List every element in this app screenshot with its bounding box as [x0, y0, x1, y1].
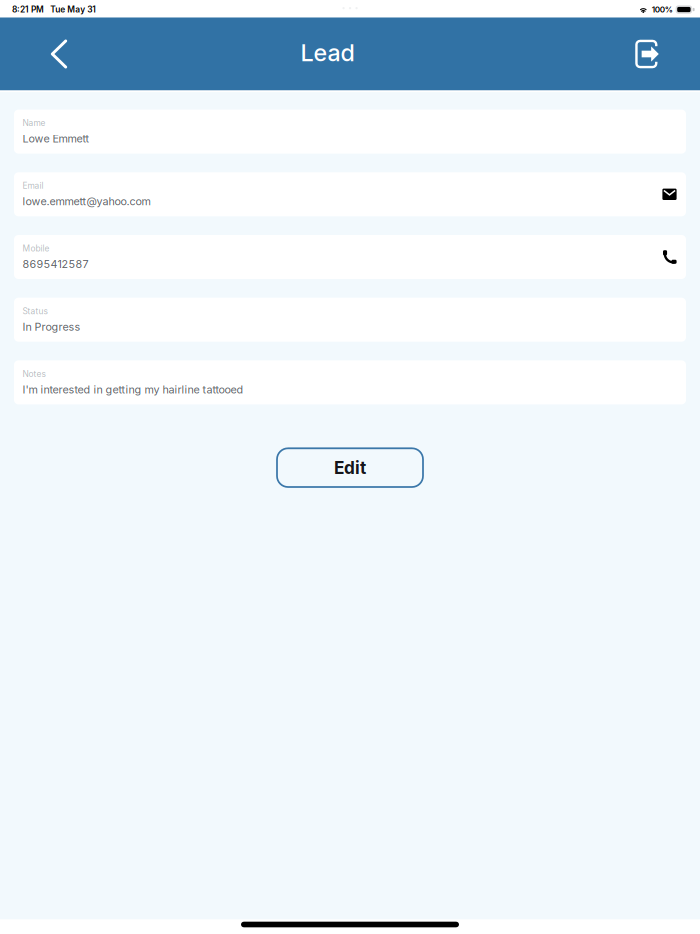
staticText: 8:21 PM — [12, 4, 44, 15]
staticText: Email — [22, 181, 43, 191]
staticText: 8695412587 — [22, 257, 88, 271]
staticText: In Progress — [22, 320, 80, 333]
staticText: lowe.emmett@yahoo.com — [22, 195, 150, 208]
button[interactable]: Mobile — [14, 235, 686, 279]
button[interactable]: Email — [14, 172, 686, 216]
button[interactable]: Status — [14, 298, 686, 342]
staticText: Edit — [334, 457, 366, 478]
staticText: Lead — [300, 38, 354, 67]
staticText: Mobile — [22, 243, 49, 254]
staticText: Notes — [22, 369, 45, 379]
staticText: I'm interested in getting my hairline ta… — [22, 383, 243, 396]
button[interactable]: Name — [14, 110, 686, 154]
button[interactable]: Back — [33, 17, 85, 90]
button[interactable]: Notes — [14, 360, 686, 404]
staticText: Tue May 31 — [50, 4, 96, 15]
staticText: Status — [22, 306, 47, 316]
button[interactable]: Log out — [621, 17, 673, 90]
staticText: Name — [22, 118, 45, 128]
staticText: Lowe Emmett — [22, 132, 89, 145]
staticText: 100% — [652, 5, 673, 14]
button[interactable]: Edit — [277, 448, 423, 487]
